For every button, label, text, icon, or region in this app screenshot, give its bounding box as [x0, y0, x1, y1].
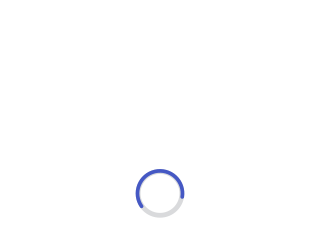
image: Loading: [135, 168, 185, 218]
